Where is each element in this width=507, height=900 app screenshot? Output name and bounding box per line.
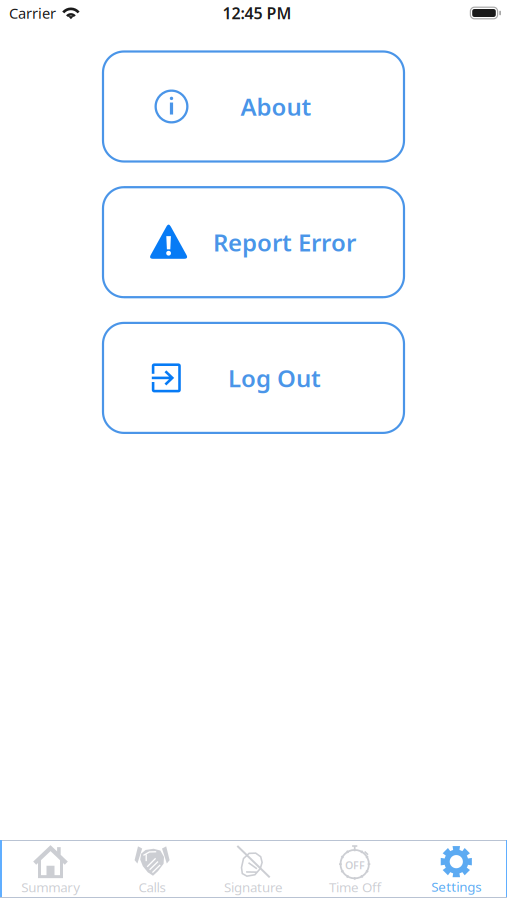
- staticText: 12:45 PM: [222, 2, 291, 24]
- staticText: OFF: [345, 858, 365, 872]
- button[interactable]: OFF: [304, 841, 406, 897]
- button[interactable]: Summary: [0, 841, 101, 897]
- button[interactable]: About: [103, 51, 404, 161]
- button[interactable]: Log Out: [103, 323, 404, 433]
- button[interactable]: Calls: [101, 841, 203, 897]
- staticText: Calls: [139, 878, 166, 896]
- staticText: Summary: [21, 878, 80, 896]
- staticText: Signature: [224, 878, 283, 896]
- staticText: Time Off: [329, 878, 381, 896]
- staticText: Log Out: [228, 362, 321, 394]
- staticText: About: [240, 91, 311, 122]
- button[interactable]: Settings: [406, 841, 507, 897]
- button[interactable]: Signature: [203, 841, 304, 897]
- staticText: Report Error: [213, 226, 356, 258]
- staticText: Settings: [431, 878, 481, 895]
- button[interactable]: Report Error: [103, 187, 404, 297]
- staticText: Carrier: [9, 3, 56, 23]
